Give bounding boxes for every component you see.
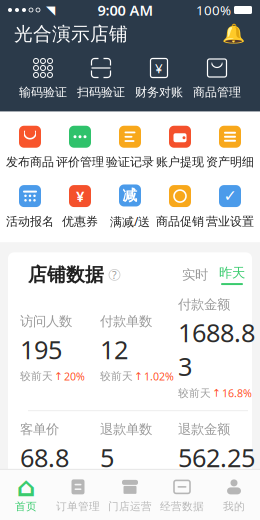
staticText: 较前天 <box>20 370 53 383</box>
staticText: 减 <box>122 186 137 204</box>
staticText: 较前天 <box>20 478 53 491</box>
staticText: 商品促销 <box>156 214 204 229</box>
staticText: ↑ <box>54 370 63 382</box>
staticText: ? <box>112 268 117 282</box>
staticText: 输码验证 <box>19 85 67 100</box>
staticText: 验证记录 <box>106 155 154 169</box>
button[interactable]: 经营数据 <box>156 474 208 516</box>
staticText: 扫码验证 <box>77 85 125 100</box>
button[interactable]: 昨天 <box>216 265 248 285</box>
staticText: 营业设置 <box>206 214 254 229</box>
button[interactable]: ¥ <box>130 52 188 104</box>
button[interactable]: Notifications <box>220 21 246 47</box>
staticText: 昨天 <box>219 265 245 281</box>
staticText: 68.8 <box>20 440 69 474</box>
staticText: 较前天 <box>100 370 133 383</box>
staticText: 光合演示店铺 <box>14 22 128 45</box>
staticText: 访问人数 <box>20 313 72 330</box>
button[interactable]: 评价管理 <box>55 122 105 172</box>
staticText: 优惠券 <box>62 214 98 229</box>
staticText: ◥ <box>46 3 55 17</box>
staticText: 评价管理 <box>56 155 104 169</box>
staticText: ↑ <box>134 370 143 382</box>
staticText: ¥ <box>155 59 163 77</box>
button[interactable]: ⌂ <box>0 474 52 516</box>
staticText: 较前天 <box>100 478 133 491</box>
staticText: 9:00 AM <box>97 0 153 20</box>
button[interactable]: 扫码验证 <box>72 52 130 104</box>
button[interactable]: 输码验证 <box>14 52 72 104</box>
staticText: 财务对账 <box>135 85 183 100</box>
button[interactable]: 实时 <box>179 267 211 283</box>
staticText: 满减/送 <box>110 213 150 229</box>
staticText: 实时 <box>182 267 208 283</box>
staticText: 10% <box>222 477 243 491</box>
staticText: 付款金额 <box>178 296 230 313</box>
button[interactable]: ✓ <box>205 181 255 232</box>
staticText: 100% <box>196 1 231 19</box>
staticText: 5.12% <box>64 477 94 491</box>
staticText: ↑ <box>134 478 143 490</box>
staticText: 退款单数 <box>100 421 152 438</box>
button[interactable]: 减 <box>105 180 155 232</box>
button[interactable]: 我的 <box>208 474 260 516</box>
staticText: 🔔 <box>221 23 244 45</box>
staticText: 订单管理 <box>56 500 100 513</box>
button[interactable]: 资产明细 <box>205 122 255 172</box>
button[interactable]: 门店运营 <box>104 474 156 516</box>
button[interactable]: 订单管理 <box>52 474 104 516</box>
staticText: 门店运营 <box>108 500 152 513</box>
staticText: 商品管理 <box>193 85 241 100</box>
staticText: 首页 <box>15 500 37 513</box>
button[interactable]: 商品管理 <box>188 52 246 104</box>
staticText: 562.25 <box>178 440 255 474</box>
staticText: 1688.83 <box>178 316 255 383</box>
staticText: 5 <box>100 440 114 474</box>
button[interactable]: 验证记录 <box>105 122 155 172</box>
button[interactable]: 商品促销 <box>155 181 205 232</box>
staticText: 付款单数 <box>100 313 152 330</box>
button[interactable]: 发布商品 <box>5 122 55 172</box>
staticText: 较前天 <box>178 386 211 400</box>
button[interactable]: 账户提现 <box>155 122 205 172</box>
staticText: 我的 <box>223 500 245 513</box>
staticText: 资产明细 <box>206 155 254 169</box>
staticText: 16.8% <box>222 386 252 400</box>
staticText: 12 <box>100 332 128 366</box>
staticText: 195 <box>20 332 62 366</box>
staticText: ↑ <box>212 387 221 399</box>
staticText: 客单价 <box>20 421 59 438</box>
staticText: 活动报名 <box>6 214 54 229</box>
staticText: 店铺数据 <box>28 263 104 286</box>
staticText: 经营数据 <box>160 500 204 513</box>
button[interactable]: ¥ <box>55 181 105 232</box>
staticText: 20% <box>64 369 85 383</box>
staticText: 退款金额 <box>178 421 230 438</box>
staticText: ¥ <box>76 186 84 206</box>
staticText: 1.02% <box>144 369 174 383</box>
staticText: 发布商品 <box>6 155 54 169</box>
staticText: ⌂ <box>16 472 35 502</box>
staticText: 账户提现 <box>156 155 204 169</box>
staticText: 较前天 <box>178 478 211 491</box>
button[interactable]: 活动报名 <box>5 181 55 232</box>
staticText: ✓ <box>223 187 236 205</box>
